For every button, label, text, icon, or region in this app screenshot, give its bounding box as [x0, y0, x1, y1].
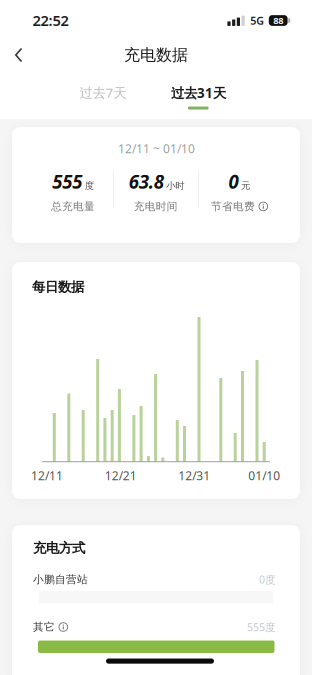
staticText: 63.8 — [129, 169, 164, 194]
staticText: 88 — [273, 14, 283, 27]
staticText: 充电数据 — [124, 45, 188, 65]
button[interactable]: 节省电费 — [211, 200, 268, 213]
staticText: 01/10 — [248, 468, 280, 483]
staticText: 度 — [85, 180, 94, 191]
staticText: 5G — [250, 14, 264, 28]
staticText: 0 — [229, 169, 239, 194]
button[interactable]: 其它 — [33, 617, 276, 637]
staticText: 小鹏自营站 — [33, 573, 88, 586]
staticText: 其它 — [33, 620, 55, 633]
staticText: 555 — [52, 169, 82, 194]
staticText: 过去31天 — [171, 84, 226, 102]
staticText: 12/21 — [105, 468, 137, 483]
staticText: 每日数据 — [32, 279, 84, 295]
staticText: 555度 — [247, 620, 276, 634]
staticText: 节省电费 — [211, 200, 255, 213]
staticText: 充电方式 — [33, 540, 85, 556]
button[interactable]: 小鹏自营站 — [33, 569, 276, 589]
button[interactable]: 过去31天 — [156, 80, 240, 106]
staticText: 小时 — [166, 180, 184, 191]
staticText: 22:52 — [32, 10, 68, 30]
staticText: 12/11 — [31, 468, 63, 483]
staticText: 元 — [241, 180, 250, 191]
staticText: 过去7天 — [79, 84, 126, 101]
staticText: 12/31 — [178, 468, 210, 483]
staticText: 总充电量 — [51, 200, 95, 213]
button[interactable] — [6, 42, 32, 68]
staticText: 0度 — [259, 572, 276, 586]
staticText: 12/11 ~ 01/10 — [118, 140, 195, 156]
staticText: 充电时间 — [134, 200, 178, 213]
button[interactable]: 过去7天 — [63, 79, 143, 105]
